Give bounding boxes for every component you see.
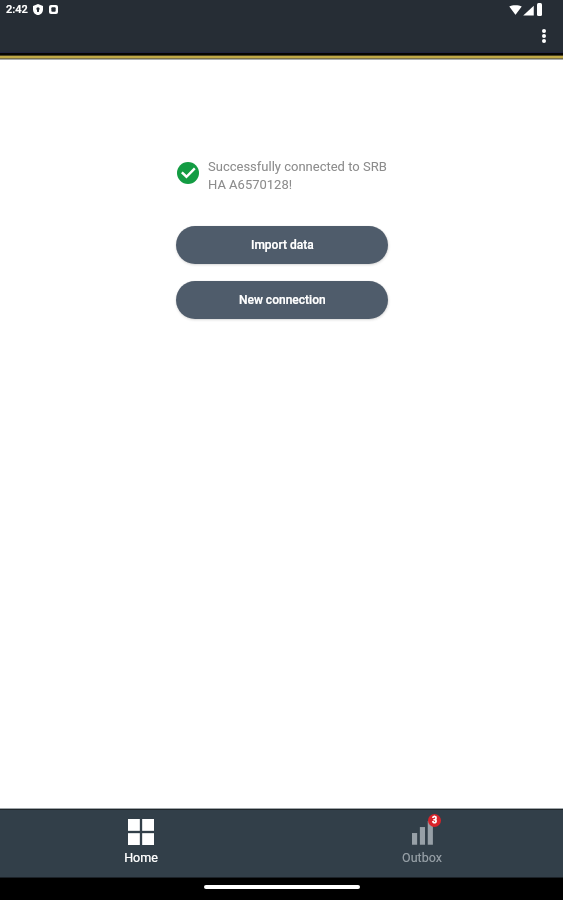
staticText: Home [124, 850, 158, 865]
staticText: New connection [239, 293, 326, 307]
staticText: Import data [251, 238, 314, 252]
button[interactable]: Import data [176, 226, 388, 264]
staticText: 3 [432, 815, 438, 826]
staticText: Successfully connected to SRB HA A657012… [208, 159, 394, 192]
staticText: 2:42 [6, 3, 28, 16]
button[interactable]: More options [529, 21, 559, 51]
button[interactable]: 3 [281, 810, 563, 877]
button[interactable]: New connection [176, 281, 388, 319]
staticText: Outbox [402, 850, 442, 865]
button[interactable]: Home [0, 810, 281, 877]
